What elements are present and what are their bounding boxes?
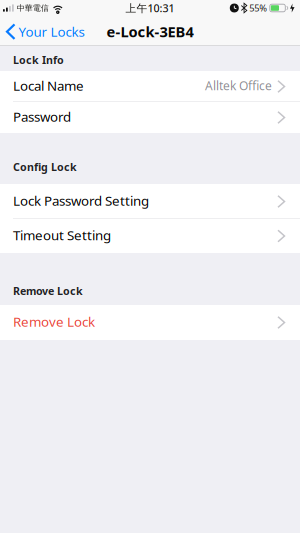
button[interactable]: Timeout Setting (0, 219, 300, 253)
button[interactable]: Remove Lock (0, 305, 300, 340)
staticText: 55% (249, 2, 267, 14)
button[interactable]: Lock Password Setting (0, 184, 300, 219)
button[interactable]: Password (0, 102, 300, 133)
staticText: Remove Lock (13, 313, 95, 330)
staticText: Local Name (13, 77, 84, 94)
staticText: Lock Info (13, 53, 64, 67)
staticText: Config Lock (13, 160, 77, 174)
button[interactable]: Local Name (0, 71, 300, 102)
staticText: 中華電信 (17, 3, 49, 13)
staticText: Your Locks (18, 23, 84, 40)
staticText: Password (13, 108, 71, 125)
staticText: e-Lock-3EB4 (106, 22, 193, 41)
staticText: Alltek Office (205, 77, 272, 93)
staticText: 上午10:31 (125, 1, 174, 15)
staticText: Remove Lock (13, 284, 83, 298)
button[interactable]: Back (0, 22, 84, 39)
staticText: Lock Password Setting (13, 192, 149, 209)
staticText: Timeout Setting (13, 226, 111, 244)
